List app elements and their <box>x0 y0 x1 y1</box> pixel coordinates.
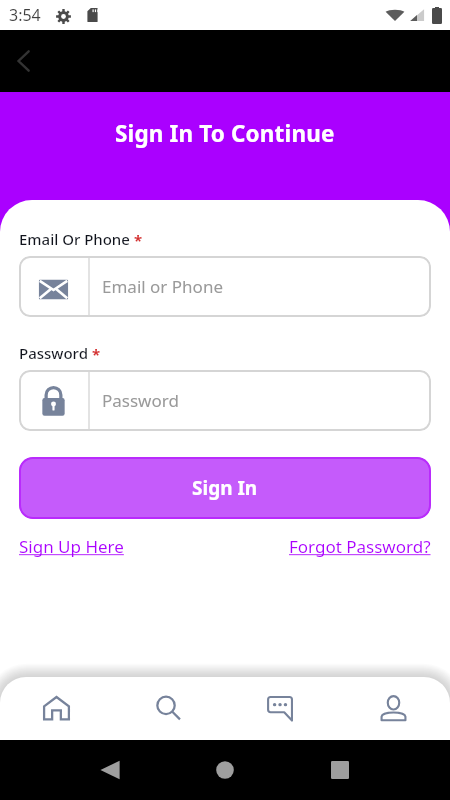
staticText: Sign In <box>192 475 258 501</box>
staticText: Email Or Phone <box>19 229 130 249</box>
button[interactable]: Password <box>19 370 431 431</box>
staticText: Password <box>102 389 179 412</box>
button[interactable]: Sign In <box>19 457 431 519</box>
staticText: * <box>134 230 143 250</box>
button[interactable]: Email or Phone <box>19 256 431 317</box>
button[interactable]: Home <box>0 677 112 740</box>
staticText: 3:54 <box>9 4 41 26</box>
button[interactable]: Back <box>0 37 48 85</box>
staticText: Sign In To Continue <box>115 118 335 149</box>
button[interactable]: Forgot Password? <box>289 535 431 558</box>
staticText: Password <box>19 343 88 363</box>
button[interactable]: Profile <box>337 677 450 740</box>
button[interactable]: Messages <box>224 677 337 740</box>
staticText: Email or Phone <box>102 275 223 298</box>
button[interactable]: Sign Up Here <box>19 535 124 558</box>
button[interactable]: Search <box>112 677 224 740</box>
staticText: * <box>92 344 101 364</box>
